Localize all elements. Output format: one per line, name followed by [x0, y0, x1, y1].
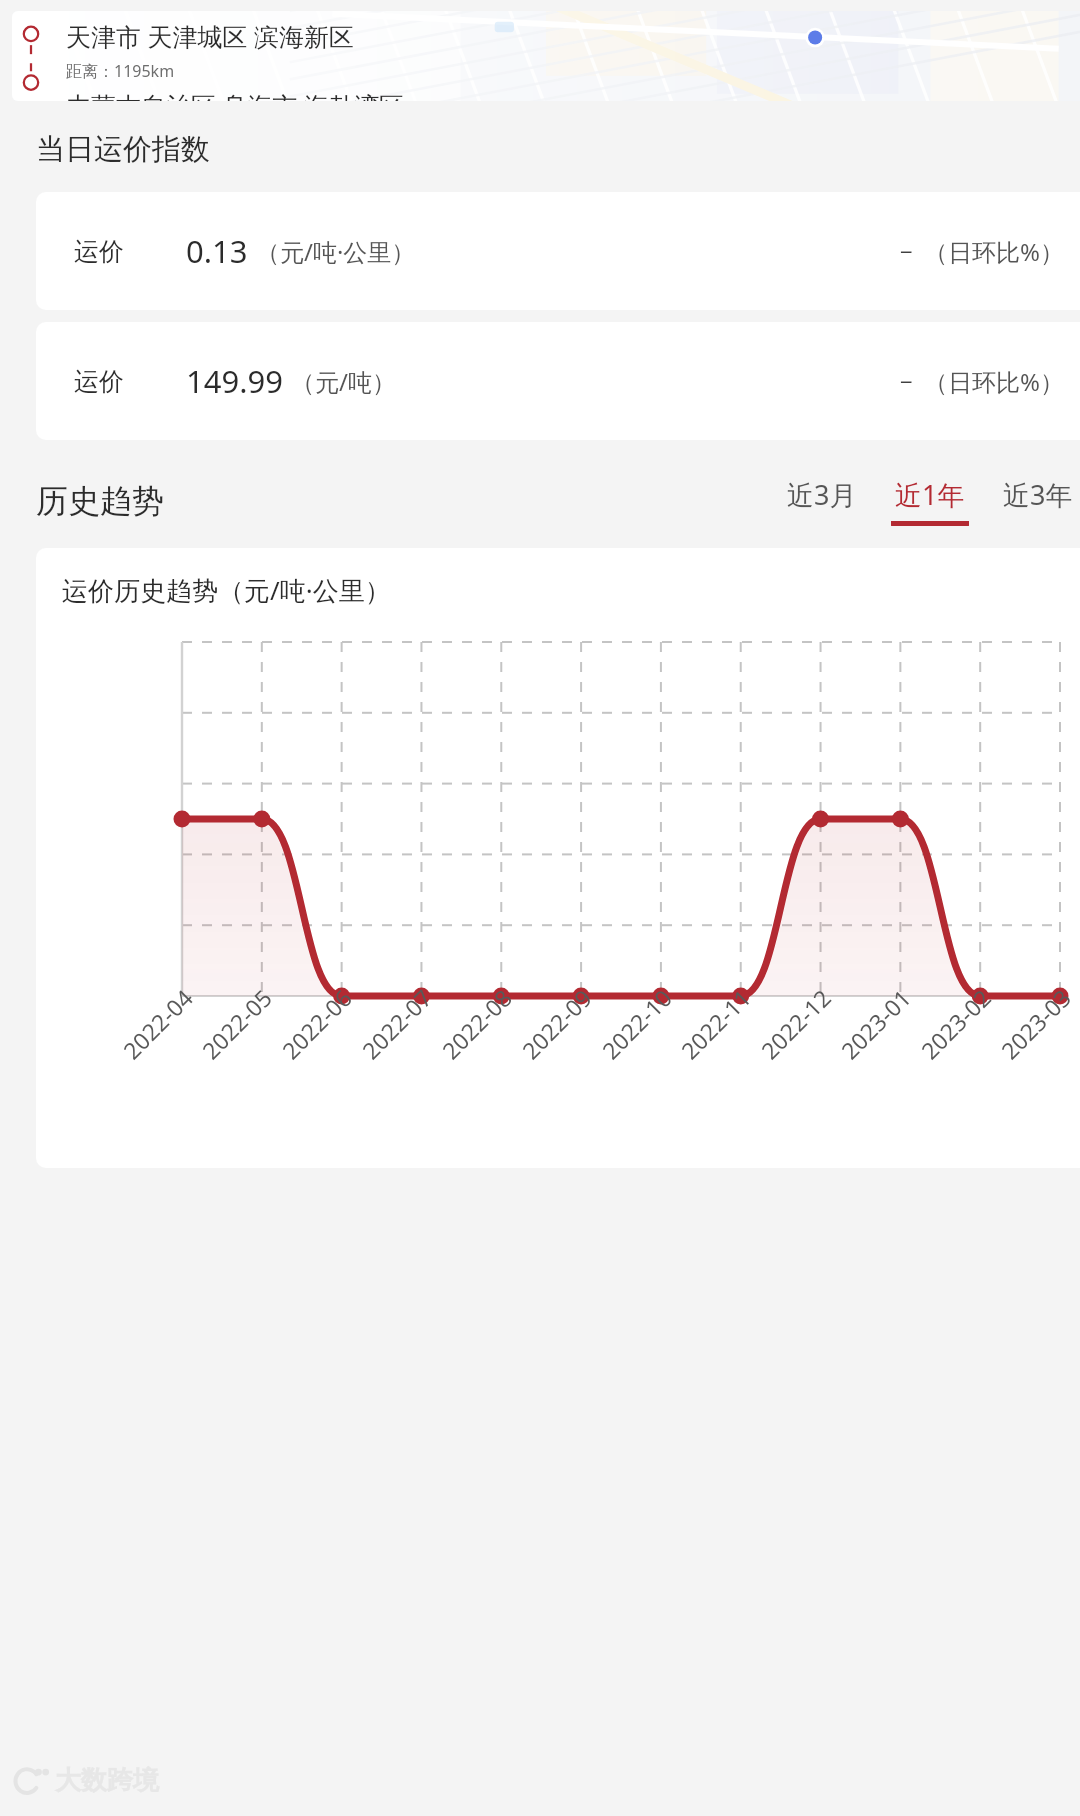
staticText: 0.13	[186, 230, 248, 272]
staticText: 大数跨境	[55, 1764, 159, 1797]
button[interactable]: 近3年	[996, 476, 1080, 526]
button[interactable]: 近1年	[888, 476, 972, 526]
staticText: 历史趋势	[36, 481, 164, 521]
staticText: 运价	[74, 236, 124, 267]
button[interactable]: 运价	[36, 322, 1080, 440]
staticText: 当日运价指数	[36, 131, 210, 168]
staticText: 距离：1195km	[66, 60, 175, 82]
staticText: （日环比%）	[924, 235, 1064, 268]
staticText: 2022-11	[674, 982, 757, 1065]
staticText: 2023-02	[914, 982, 997, 1065]
button[interactable]: 运价历史趋势（元/吨·公里）	[36, 548, 1080, 1168]
staticText: （日环比%）	[924, 365, 1064, 398]
staticText: －	[894, 236, 918, 266]
staticText: 运价	[74, 366, 124, 397]
staticText: 2022-08	[435, 982, 518, 1065]
button[interactable]: 近3月	[780, 476, 864, 526]
staticText: 运价历史趋势（元/吨·公里）	[62, 572, 391, 608]
staticText: 2022-04	[116, 982, 199, 1065]
staticText: （元/吨·公里）	[256, 235, 416, 268]
staticText: 2023-01	[834, 982, 917, 1065]
button[interactable]: 天津市 天津城区 滨海新区	[12, 11, 1080, 101]
staticText: －	[894, 366, 918, 396]
staticText: 近3月	[787, 476, 857, 513]
staticText: 2023-03	[994, 982, 1077, 1065]
staticText: 2022-09	[515, 982, 598, 1065]
staticText: 天津市 天津城区 滨海新区	[66, 19, 355, 53]
staticText: 2022-10	[595, 982, 678, 1065]
staticText: 2022-07	[355, 982, 438, 1065]
staticText: （元/吨）	[291, 365, 396, 398]
staticText: 近1年	[895, 476, 965, 513]
staticText: 近3年	[1003, 476, 1073, 513]
staticText: 2022-05	[195, 982, 278, 1065]
staticText: 149.99	[186, 360, 283, 402]
staticText: 内蒙古自治区 乌海市 海勃湾区	[66, 88, 405, 101]
staticText: 2022-12	[754, 982, 837, 1065]
button[interactable]: 运价	[36, 192, 1080, 310]
staticText: 2022-06	[275, 982, 358, 1065]
